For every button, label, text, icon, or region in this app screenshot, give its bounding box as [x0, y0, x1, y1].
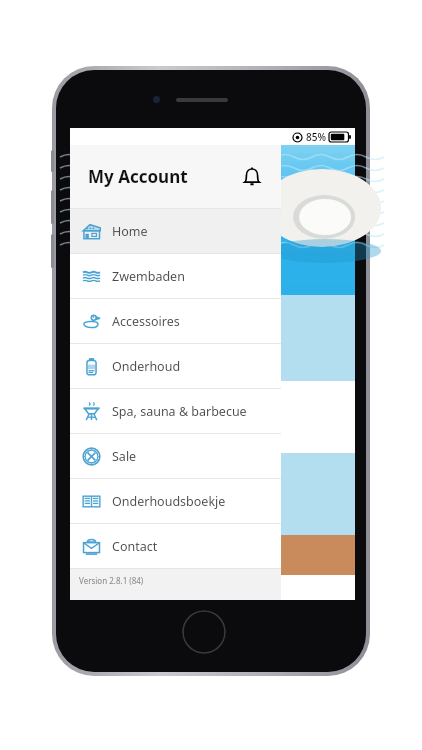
button[interactable]: Accessoires	[70, 299, 281, 343]
button[interactable]: Spa, sauna & barbecue	[70, 389, 281, 433]
staticText: Onderhoud	[112, 358, 181, 375]
button[interactable]: Notifications	[235, 160, 269, 194]
staticText: ONDERHOUD	[160, 484, 265, 504]
staticText: Zwembaden	[112, 268, 185, 285]
button[interactable]: Sale	[70, 434, 281, 478]
button[interactable]: Onderhoudsboekje	[70, 479, 281, 523]
staticText: 85%	[306, 130, 326, 144]
staticText: Version 2.8.1 (84)	[79, 575, 144, 586]
staticText: My Account	[88, 165, 188, 188]
staticText: ZWEMBADEN	[160, 328, 265, 348]
staticText: Spa, sauna & barbecue	[112, 403, 247, 420]
button[interactable]: Home	[70, 209, 281, 253]
staticText: Accessoires	[112, 313, 180, 330]
staticText: Contact	[112, 538, 158, 555]
staticText: Onderhoudsboekje	[112, 493, 226, 510]
staticText: Home	[112, 223, 148, 240]
staticText: Sale	[112, 448, 137, 465]
button[interactable]: Zwembaden	[70, 254, 281, 298]
button[interactable]: Contact	[70, 524, 281, 568]
button[interactable]: Onderhoud	[70, 344, 281, 388]
